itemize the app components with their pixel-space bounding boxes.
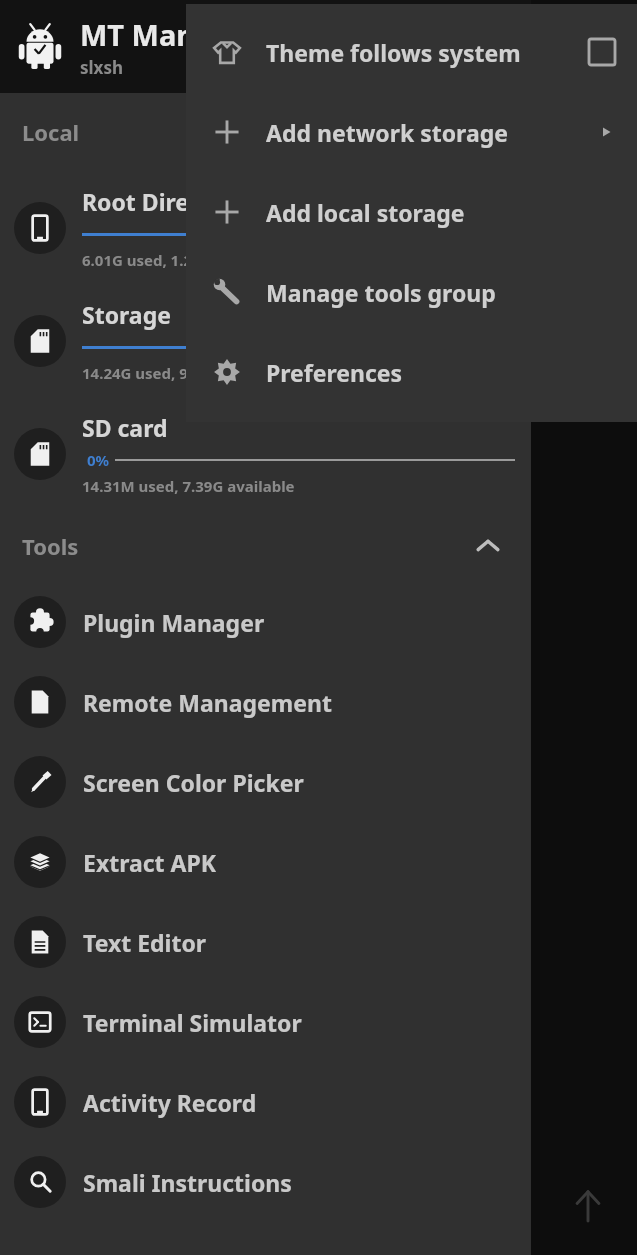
staticText: Local [22,117,80,147]
staticText: Remote Management [83,687,332,718]
button[interactable]: Extract APK [0,822,531,902]
button[interactable]: Theme follows system [186,12,637,92]
button[interactable]: Plugin Manager [0,582,531,662]
button[interactable]: Add network storage [186,92,637,172]
staticText: Preferences [266,357,403,388]
staticText: MT Manager [80,15,262,54]
staticText: SD card [82,412,168,443]
button[interactable]: Scroll to top [567,1185,609,1227]
staticText: Storage [82,299,171,330]
staticText: 6.01G used, 1.28G available [82,250,283,270]
staticText: Add network storage [266,117,508,148]
staticText: Plugin Manager [83,607,265,638]
staticText: Extract APK [83,847,217,878]
button[interactable]: MT Manager [0,0,531,93]
staticText: Tools [22,531,79,561]
button[interactable]: SD card [0,397,531,510]
staticText: Add local storage [266,197,465,228]
staticText: Screen Color Picker [83,767,304,798]
staticText: slxsh [80,56,124,79]
staticText: Text Editor [83,927,207,958]
staticText: Theme follows system [266,37,521,68]
staticText: Root Directory [82,186,249,217]
button[interactable]: Storage [0,284,531,397]
staticText: 14.31M used, 7.39G available [82,476,295,496]
button[interactable]: Tools [0,510,531,582]
other: Theme follows system checkbox [589,39,615,65]
button[interactable]: Terminal Simulator [0,982,531,1062]
button[interactable]: Preferences [186,332,637,412]
staticText: Activity Record [83,1087,257,1118]
button[interactable]: Root Directory [0,171,531,284]
button[interactable]: Text Editor [0,902,531,982]
staticText: Smali Instructions [83,1167,292,1198]
staticText: Terminal Simulator [83,1007,302,1038]
other: Collapse Tools [475,533,501,559]
button[interactable]: Smali Instructions [0,1142,531,1222]
staticText: 14.24G used, 91.6G available [82,363,292,383]
button[interactable]: Manage tools group [186,252,637,332]
button[interactable]: Activity Record [0,1062,531,1142]
button[interactable]: Remote Management [0,662,531,742]
button[interactable]: Add local storage [186,172,637,252]
staticText: Manage tools group [266,277,496,308]
button[interactable]: Screen Color Picker [0,742,531,822]
staticText: 0% [87,450,110,470]
